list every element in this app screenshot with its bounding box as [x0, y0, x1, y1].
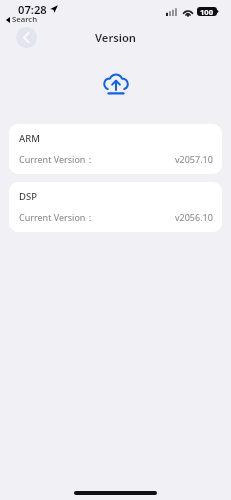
staticText: ARM — [19, 132, 40, 145]
button[interactable]: ARM — [9, 124, 222, 174]
staticText: 07:28 — [18, 2, 47, 17]
button[interactable]: Back — [16, 27, 37, 48]
staticText: DSP — [19, 190, 37, 203]
button[interactable]: Search — [6, 14, 38, 25]
staticText: Version — [95, 30, 136, 45]
staticText: Current Version： — [19, 153, 95, 165]
button[interactable]: DSP — [9, 182, 222, 232]
staticText: 100 — [200, 7, 214, 16]
staticText: v2056.10 — [175, 211, 213, 223]
staticText: Search — [12, 14, 38, 25]
staticText: v2057.10 — [175, 153, 213, 165]
staticText: Current Version： — [19, 211, 95, 223]
